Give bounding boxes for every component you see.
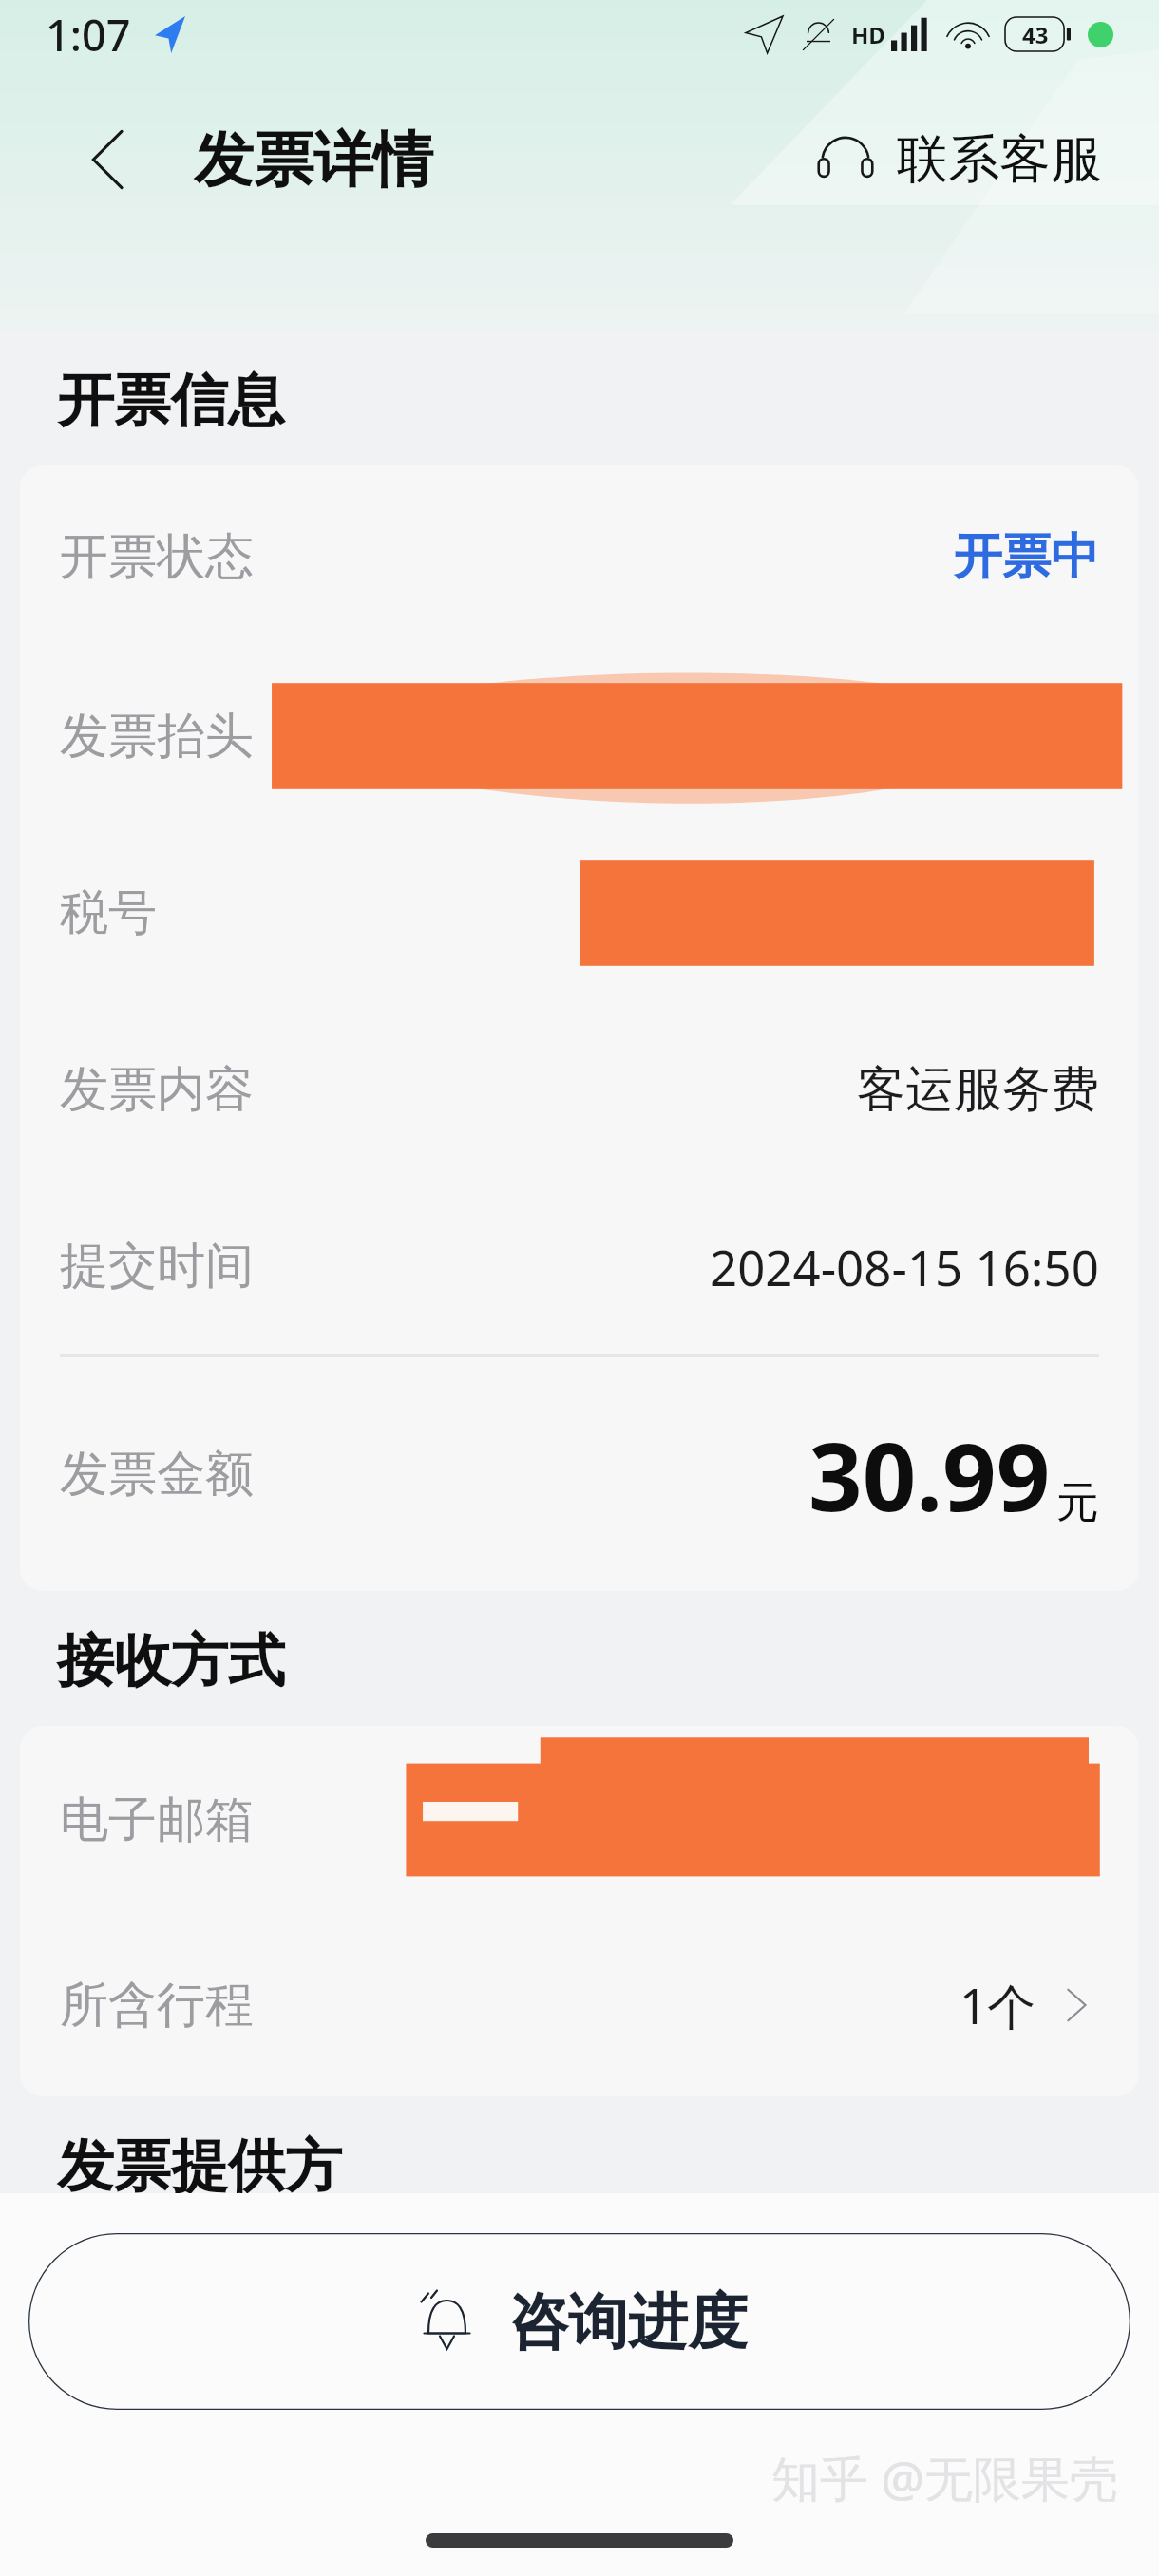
staticText: 知乎 @无限果壳 [771,2444,1119,2510]
staticText: 元 [1056,1476,1099,1530]
staticText: 30.99 [808,1411,1051,1539]
staticText: 风韵出行提供发票 [712,2306,1099,2367]
staticText: 开票中 [954,526,1099,587]
staticText: 发票详情 [194,123,433,198]
button[interactable]: Back [40,91,177,228]
button[interactable]: 咨询进度 [28,2233,1130,2410]
staticText: 提交时间 [60,1236,254,1297]
button[interactable]: 联系客服 [794,108,1119,211]
staticText: 发票提供方 [57,2131,342,2203]
staticText: 1:07 [46,6,131,64]
staticText: 开票信息 [57,365,285,437]
staticText: 1个 [959,1972,1036,2038]
staticText: 发票抬头 [60,706,254,767]
staticText: 客运服务费 [857,1059,1099,1120]
staticText: 联系客服 [897,127,1102,192]
staticText: 如您对发票信息有任何疑问，请联系客服 [169,2528,990,2576]
staticText: 电子邮箱 [60,1790,254,1850]
staticText: 发票金额 [60,1444,254,1505]
staticText: 开票状态 [60,526,254,587]
staticText: HD [851,19,885,50]
button[interactable]: 所含行程 [20,1914,1139,2096]
staticText: 发票内容 [60,1059,254,1120]
staticText: 43 [1022,19,1049,50]
staticText: 接收方式 [57,1625,285,1697]
staticText: 税号 [60,882,157,943]
staticText: 咨询进度 [508,2284,748,2359]
staticText: 2024-08-15 16:50 [710,1234,1099,1299]
staticText: 所含行程 [60,1975,254,2036]
